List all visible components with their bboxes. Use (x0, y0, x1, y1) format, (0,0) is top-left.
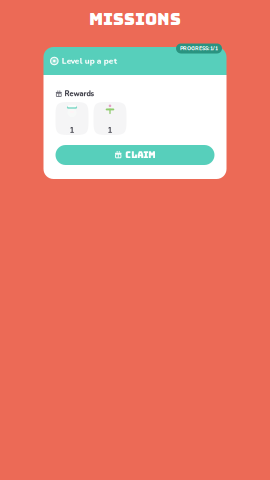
button[interactable]: CLAIM (55, 145, 214, 165)
staticText: PROGRESS: 1/1 (180, 45, 218, 52)
staticText: 1 (69, 124, 74, 135)
button[interactable]: Reward 1 (93, 102, 126, 135)
staticText: 1 (107, 124, 112, 135)
staticText: Level up a pet (62, 55, 117, 67)
button[interactable]: Reward 1 (55, 102, 88, 135)
staticText: MISSIONS (89, 8, 181, 30)
button[interactable]: PROGRESS: 1/1 (176, 43, 222, 53)
staticText: CLAIM (125, 149, 155, 161)
staticText: Rewards (65, 89, 95, 99)
